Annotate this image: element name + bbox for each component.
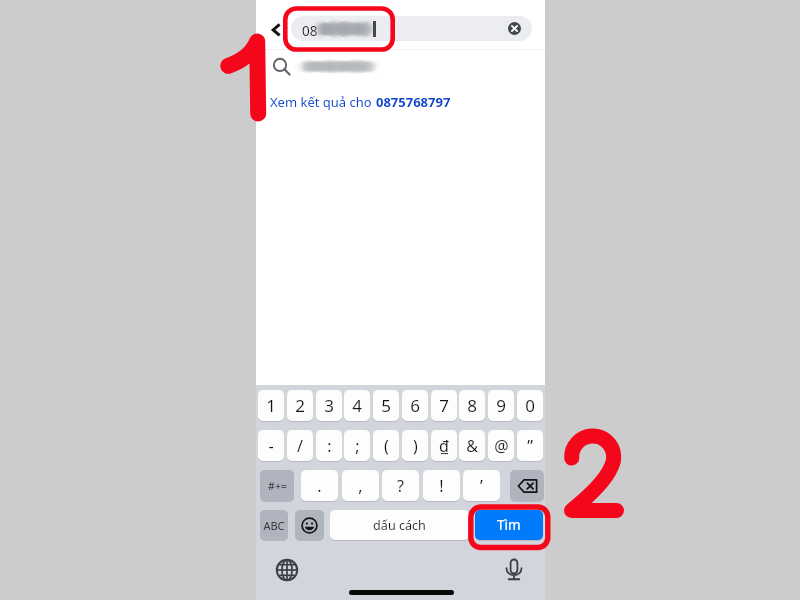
button[interactable]: . — [301, 470, 338, 501]
staticText: ) — [413, 435, 418, 457]
staticText: / — [297, 435, 303, 457]
button[interactable]: , — [342, 470, 379, 501]
button[interactable]: 9 — [488, 390, 514, 421]
staticText: 08 — [302, 22, 318, 40]
staticText: Xem kết quả cho — [270, 93, 376, 111]
staticText: 1 — [266, 394, 276, 417]
button[interactable]: Backspace — [510, 470, 544, 501]
button[interactable] — [256, 52, 545, 80]
staticText: 8 — [467, 394, 477, 417]
button[interactable]: ) — [402, 430, 428, 461]
staticText: : — [327, 435, 332, 457]
staticText: ’ — [480, 475, 483, 497]
button[interactable]: ₫ — [431, 430, 457, 461]
button[interactable]: Clear text — [508, 22, 521, 35]
staticText: ; — [355, 435, 360, 457]
staticText: #+= — [268, 479, 287, 493]
staticText: 0875768797 — [376, 93, 451, 111]
button[interactable]: #+= — [260, 470, 294, 501]
staticText: ( — [384, 435, 389, 457]
staticText: Tìm — [497, 516, 521, 534]
button[interactable]: 8 — [459, 390, 485, 421]
staticText: - — [268, 435, 274, 457]
button[interactable]: ’ — [463, 470, 500, 501]
staticText: ? — [397, 475, 404, 497]
staticText: ABC — [263, 518, 285, 533]
button[interactable]: Change keyboard language — [275, 558, 299, 582]
button[interactable]: Voice input — [503, 558, 527, 582]
staticText: 7 — [439, 394, 449, 417]
staticText: 3 — [324, 394, 334, 417]
staticText: ! — [439, 475, 444, 497]
staticText: 4 — [352, 394, 362, 417]
button[interactable]: 4 — [344, 390, 370, 421]
button[interactable]: 3 — [316, 390, 342, 421]
button[interactable]: ABC — [260, 510, 288, 540]
staticText: 9 — [496, 394, 506, 417]
staticText: 6 — [410, 394, 420, 417]
staticText: @ — [494, 435, 509, 457]
button[interactable]: - — [258, 430, 284, 461]
staticText: dấu cách — [373, 517, 426, 534]
staticText: 0 — [525, 394, 535, 417]
staticText: 5 — [381, 394, 391, 417]
button[interactable]: 7 — [431, 390, 457, 421]
button[interactable]: dấu cách — [330, 510, 469, 540]
button[interactable]: @ — [488, 430, 514, 461]
button[interactable]: 0 — [517, 390, 543, 421]
button[interactable]: Xem kết quả cho — [270, 93, 451, 111]
button[interactable]: & — [459, 430, 485, 461]
button[interactable]: / — [287, 430, 313, 461]
button[interactable]: 6 — [402, 390, 428, 421]
staticText: 2 — [295, 394, 305, 417]
staticText: ₫ — [439, 435, 449, 457]
staticText: . — [317, 475, 322, 497]
staticText: , — [358, 475, 363, 497]
button[interactable]: ” — [517, 430, 543, 461]
button[interactable]: ( — [373, 430, 399, 461]
button[interactable]: 2 — [287, 390, 313, 421]
button[interactable]: ; — [344, 430, 370, 461]
button[interactable]: Tìm — [475, 510, 543, 540]
button[interactable]: 1 — [258, 390, 284, 421]
button[interactable]: Emoji keyboard — [295, 510, 324, 540]
button[interactable]: 5 — [373, 390, 399, 421]
staticText: & — [466, 435, 478, 457]
button[interactable]: Back — [262, 17, 286, 41]
staticText: ” — [527, 435, 533, 457]
button[interactable]: : — [316, 430, 342, 461]
button[interactable]: ? — [382, 470, 419, 501]
button[interactable]: ! — [423, 470, 460, 501]
button[interactable]: 08 — [291, 16, 532, 41]
